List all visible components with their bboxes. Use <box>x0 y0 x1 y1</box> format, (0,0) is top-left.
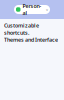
staticText: Personal <box>22 2 41 17</box>
button[interactable]: Personal <box>14 5 50 14</box>
staticText: v <box>46 7 48 12</box>
staticText: Customizable shortcuts. Themes and Inter… <box>4 22 58 43</box>
